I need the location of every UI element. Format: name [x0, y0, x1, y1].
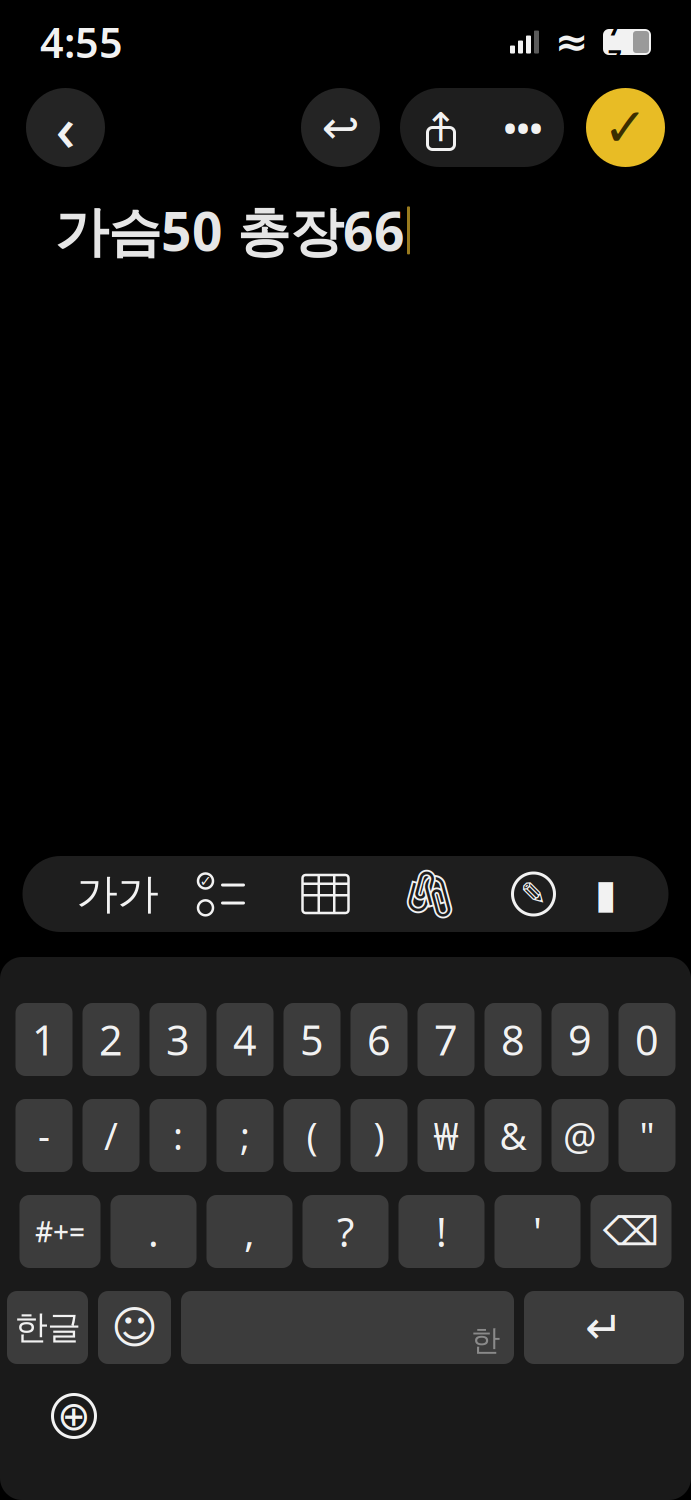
staticText: ✓: [199, 873, 211, 889]
staticText: ?: [337, 1205, 354, 1258]
staticText: 8: [501, 1012, 525, 1067]
button[interactable]: 3: [149, 1003, 206, 1076]
button[interactable]: 0: [618, 1003, 675, 1076]
button[interactable]: Share: [400, 88, 482, 167]
staticText: ': [533, 1205, 542, 1258]
button[interactable]: ;: [216, 1099, 273, 1172]
staticText: ↵: [585, 1302, 623, 1353]
staticText: #+=: [35, 1213, 85, 1250]
button[interactable]: 6: [350, 1003, 407, 1076]
staticText: ↑: [424, 105, 458, 150]
button[interactable]: ,: [206, 1195, 292, 1268]
button[interactable]: 8: [484, 1003, 541, 1076]
staticText: ,: [244, 1205, 255, 1258]
staticText: ⌫: [602, 1209, 659, 1254]
button[interactable]: More tools: [585, 856, 625, 932]
staticText: 5: [300, 1012, 324, 1067]
button[interactable]: :: [149, 1099, 206, 1172]
button[interactable]: Checklist: [169, 856, 273, 932]
button[interactable]: #+=: [19, 1195, 100, 1268]
button[interactable]: Back: [26, 88, 105, 167]
button[interactable]: -: [15, 1099, 72, 1172]
staticText: ;: [240, 1111, 250, 1160]
button[interactable]: ': [494, 1195, 580, 1268]
button[interactable]: 4: [216, 1003, 273, 1076]
button[interactable]: Emoji: [98, 1291, 171, 1364]
staticText: (: [306, 1111, 317, 1160]
staticText: ‹: [55, 87, 75, 168]
staticText: ": [639, 1111, 654, 1160]
button[interactable]: .: [110, 1195, 196, 1268]
staticText: 9: [568, 1012, 592, 1067]
button[interactable]: 5: [283, 1003, 340, 1076]
button[interactable]: 한글: [7, 1291, 88, 1364]
button[interactable]: ?: [302, 1195, 388, 1268]
staticText: 4: [233, 1012, 257, 1067]
button[interactable]: 7: [417, 1003, 474, 1076]
staticText: 한: [471, 1322, 500, 1358]
staticText: 7: [434, 1012, 458, 1067]
button[interactable]: Attach file: [377, 856, 481, 932]
staticText: -: [38, 1111, 50, 1160]
staticText: ✓: [603, 97, 648, 158]
staticText: 4:55: [40, 15, 123, 69]
staticText: ☺: [111, 1302, 158, 1353]
staticText: 6: [367, 1012, 391, 1067]
button[interactable]: /: [82, 1099, 139, 1172]
staticText: :: [173, 1111, 183, 1160]
button[interactable]: 2: [82, 1003, 139, 1076]
button[interactable]: 9: [551, 1003, 608, 1076]
button[interactable]: &: [484, 1099, 541, 1172]
staticText: .: [148, 1205, 159, 1258]
button[interactable]: Switch keyboard: [44, 1386, 104, 1446]
button[interactable]: Delete: [590, 1195, 671, 1268]
button[interactable]: More: [482, 88, 564, 167]
staticText: 2: [99, 1012, 123, 1067]
staticText: /: [104, 1111, 118, 1160]
button[interactable]: @: [551, 1099, 608, 1172]
button[interactable]: Markup: [481, 856, 585, 932]
staticText: 가가: [76, 869, 158, 919]
button[interactable]: 1: [15, 1003, 72, 1076]
button[interactable]: ₩: [417, 1099, 474, 1172]
staticText: @: [563, 1111, 597, 1160]
staticText: 한글: [14, 1307, 80, 1348]
button[interactable]: Return: [524, 1291, 684, 1364]
staticText: ↩: [321, 102, 359, 153]
staticText: !: [436, 1205, 447, 1258]
staticText: 0: [635, 1012, 659, 1067]
button[interactable]: !: [398, 1195, 484, 1268]
button[interactable]: Undo: [301, 88, 380, 167]
button[interactable]: Space: [181, 1291, 514, 1364]
staticText: &: [499, 1111, 526, 1160]
button[interactable]: Done: [586, 88, 665, 167]
staticText: •••: [503, 104, 542, 150]
staticText: ≈: [555, 19, 589, 65]
button[interactable]: 가가: [65, 856, 169, 932]
button[interactable]: ": [618, 1099, 675, 1172]
button[interactable]: (: [283, 1099, 340, 1172]
staticText: ✎: [520, 876, 547, 912]
button[interactable]: ): [350, 1099, 407, 1172]
staticText: 🖇: [399, 867, 460, 921]
staticText: ₩: [433, 1111, 458, 1160]
staticText: 가슴50 총장66: [55, 195, 405, 266]
staticText: ▮: [594, 871, 616, 917]
staticText: 3: [166, 1012, 190, 1067]
staticText: ⊕: [57, 1393, 91, 1439]
button[interactable]: Table: [273, 856, 377, 932]
staticText: ): [373, 1111, 384, 1160]
staticText: 1: [32, 1012, 56, 1067]
staticText: 77: [608, 10, 622, 74]
